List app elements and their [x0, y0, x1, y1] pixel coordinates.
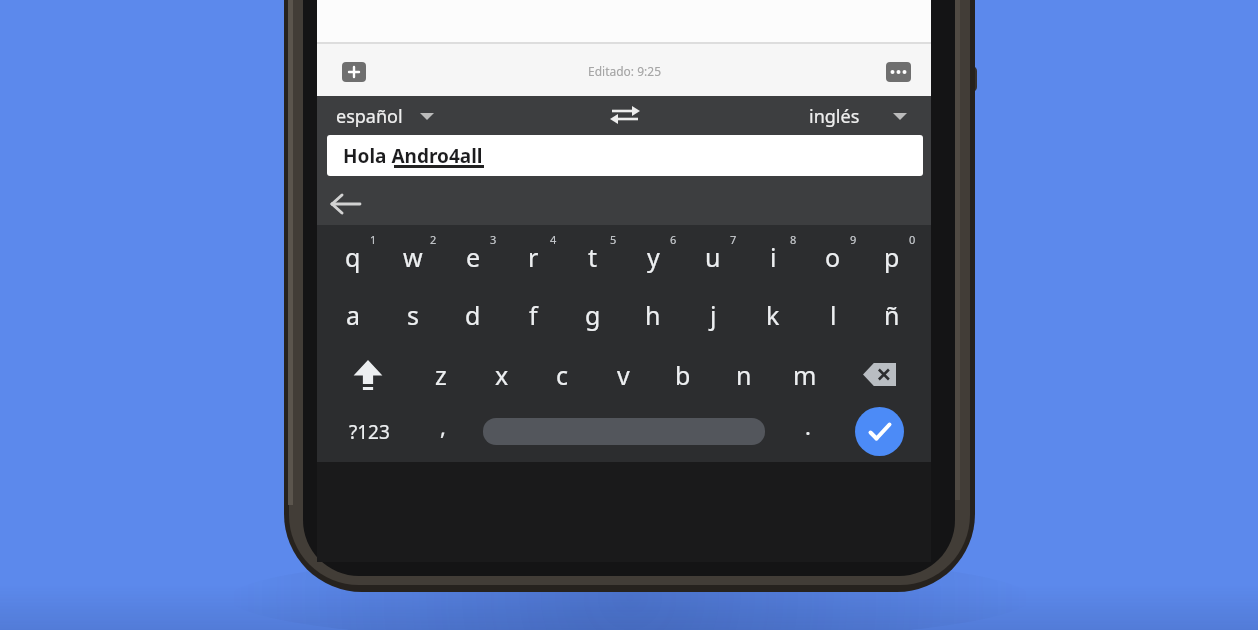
button[interactable]: .	[778, 397, 838, 455]
staticText: ,	[440, 411, 446, 441]
button[interactable]: e	[443, 228, 503, 286]
button[interactable]	[606, 102, 644, 128]
staticText: 1	[370, 232, 377, 247]
button[interactable]: f	[503, 286, 563, 344]
staticText: 6	[670, 232, 677, 247]
staticText: ?123	[349, 419, 390, 445]
staticText: Hola Andro4all	[343, 143, 483, 169]
button[interactable]: g	[563, 286, 623, 344]
button[interactable]	[855, 407, 904, 456]
button[interactable]	[352, 360, 384, 390]
staticText: l	[830, 298, 837, 332]
button[interactable]: x	[472, 346, 532, 404]
button[interactable]: ñ	[862, 286, 922, 344]
button[interactable]	[483, 418, 765, 445]
staticText: c	[556, 358, 569, 392]
staticText: m	[793, 358, 817, 392]
staticText: .	[805, 411, 811, 441]
staticText: 9	[850, 232, 857, 247]
staticText: b	[675, 358, 691, 392]
button[interactable]: u	[683, 228, 743, 286]
button[interactable]: d	[443, 286, 503, 344]
staticText: k	[766, 298, 780, 332]
staticText: d	[465, 298, 481, 332]
staticText: j	[710, 298, 717, 332]
staticText: x	[495, 358, 509, 392]
button[interactable]	[886, 62, 911, 82]
button[interactable]: p	[862, 228, 922, 286]
button[interactable]: b	[653, 346, 713, 404]
button[interactable]: o	[803, 228, 863, 286]
staticText: y	[647, 240, 660, 274]
staticText: u	[705, 240, 721, 274]
button[interactable]: español	[336, 98, 496, 134]
button[interactable]: inglés	[740, 98, 860, 134]
staticText: ñ	[884, 298, 900, 332]
button[interactable]: t	[563, 228, 623, 286]
staticText: q	[345, 240, 361, 274]
button[interactable]: h	[623, 286, 683, 344]
staticText: v	[617, 358, 630, 392]
staticText: a	[346, 298, 361, 332]
button[interactable]	[330, 192, 364, 216]
button[interactable]: s	[383, 286, 443, 344]
staticText: s	[407, 298, 419, 332]
button[interactable]: n	[714, 346, 774, 404]
staticText: Editado: 9:25	[588, 63, 661, 79]
staticText: f	[529, 298, 538, 332]
button[interactable]: ,	[413, 397, 473, 455]
button[interactable]: a	[323, 286, 383, 344]
staticText: e	[466, 240, 481, 274]
button[interactable]: c	[532, 346, 592, 404]
button[interactable]: y	[623, 228, 683, 286]
button[interactable]: k	[743, 286, 803, 344]
button[interactable]: v	[593, 346, 653, 404]
staticText: 5	[610, 232, 617, 247]
staticText: o	[825, 240, 841, 274]
staticText: i	[770, 240, 777, 274]
staticText: g	[585, 298, 601, 332]
staticText: h	[645, 298, 661, 332]
button[interactable]: i	[743, 228, 803, 286]
staticText: 3	[490, 232, 497, 247]
button[interactable]: l	[803, 286, 863, 344]
staticText: t	[588, 240, 598, 274]
staticText: z	[435, 358, 447, 392]
button[interactable]: r	[503, 228, 563, 286]
staticText: español	[336, 104, 403, 129]
button[interactable]: ?123	[338, 415, 400, 449]
staticText: 4	[550, 232, 557, 247]
button[interactable]: m	[775, 346, 835, 404]
staticText: 0	[909, 232, 916, 247]
button[interactable]: Hola Andro4all	[327, 135, 923, 176]
button[interactable]	[863, 363, 899, 386]
staticText: r	[528, 240, 539, 274]
button[interactable]: q	[323, 228, 383, 286]
staticText: 7	[730, 232, 737, 247]
button[interactable]: z	[411, 346, 471, 404]
button[interactable]	[342, 62, 366, 82]
button[interactable]: w	[383, 228, 443, 286]
staticText: 2	[430, 232, 437, 247]
staticText: p	[884, 240, 900, 274]
staticText: 8	[790, 232, 797, 247]
staticText: inglés	[809, 104, 860, 129]
button[interactable]: j	[683, 286, 743, 344]
staticText: n	[736, 358, 752, 392]
staticText: w	[403, 240, 423, 274]
